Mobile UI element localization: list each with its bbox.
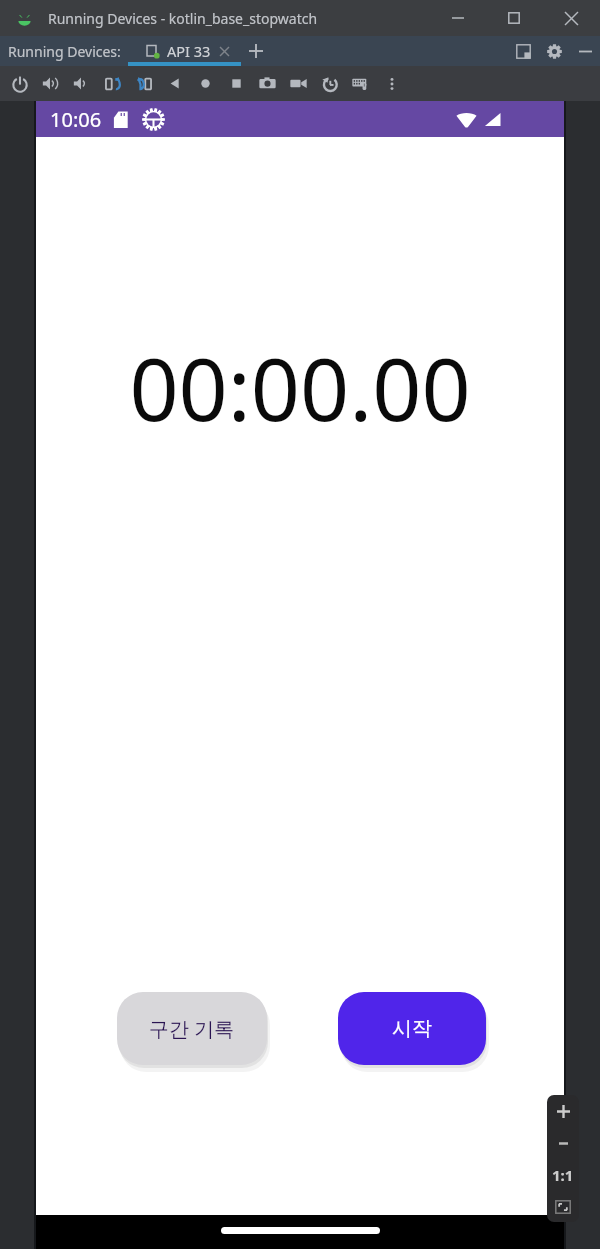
staticText: 시작 [392,1016,432,1041]
button[interactable]: Power [4,66,35,101]
staticText: API 33 [167,41,211,61]
staticText: 구간 기록 [149,1015,235,1042]
button[interactable]: Volume down [66,66,97,101]
staticText: 1:1 [552,1165,574,1185]
button[interactable]: Zoom in [547,1095,579,1127]
button[interactable]: Overview [221,66,252,101]
button[interactable]: Back [159,66,190,101]
button[interactable]: Close [542,0,600,36]
button[interactable]: Hide [570,36,600,66]
button[interactable]: 시작 [338,992,486,1065]
button[interactable]: Home [190,66,221,101]
button[interactable]: History [314,66,345,101]
staticText: Running Devices: [8,42,121,61]
button[interactable]: Volume up [35,66,66,101]
button[interactable]: Settings [539,36,570,66]
button[interactable]: Rotate left [97,66,128,101]
button[interactable]: Minimize [430,0,486,36]
button[interactable]: Rotate right [128,66,159,101]
button[interactable]: 구간 기록 [117,992,267,1065]
button[interactable]: Record [283,66,314,101]
button[interactable]: Keyboard [345,66,376,101]
button[interactable]: API 33 [128,36,241,66]
button[interactable]: Layout [508,36,539,66]
staticText: 00:00.00 [129,329,471,446]
button[interactable]: More [376,66,407,101]
staticText: 10:06 [50,106,102,133]
staticText: Running Devices - kotlin_base_stopwatch [48,9,318,28]
button[interactable]: Zoom out [547,1127,579,1159]
button[interactable]: Maximize [486,0,542,36]
button[interactable]: Zoom to fit [547,1191,579,1222]
button[interactable]: Add device [241,36,271,66]
button[interactable]: Zoom 1:1 [547,1159,579,1191]
button[interactable]: Screenshot [252,66,283,101]
